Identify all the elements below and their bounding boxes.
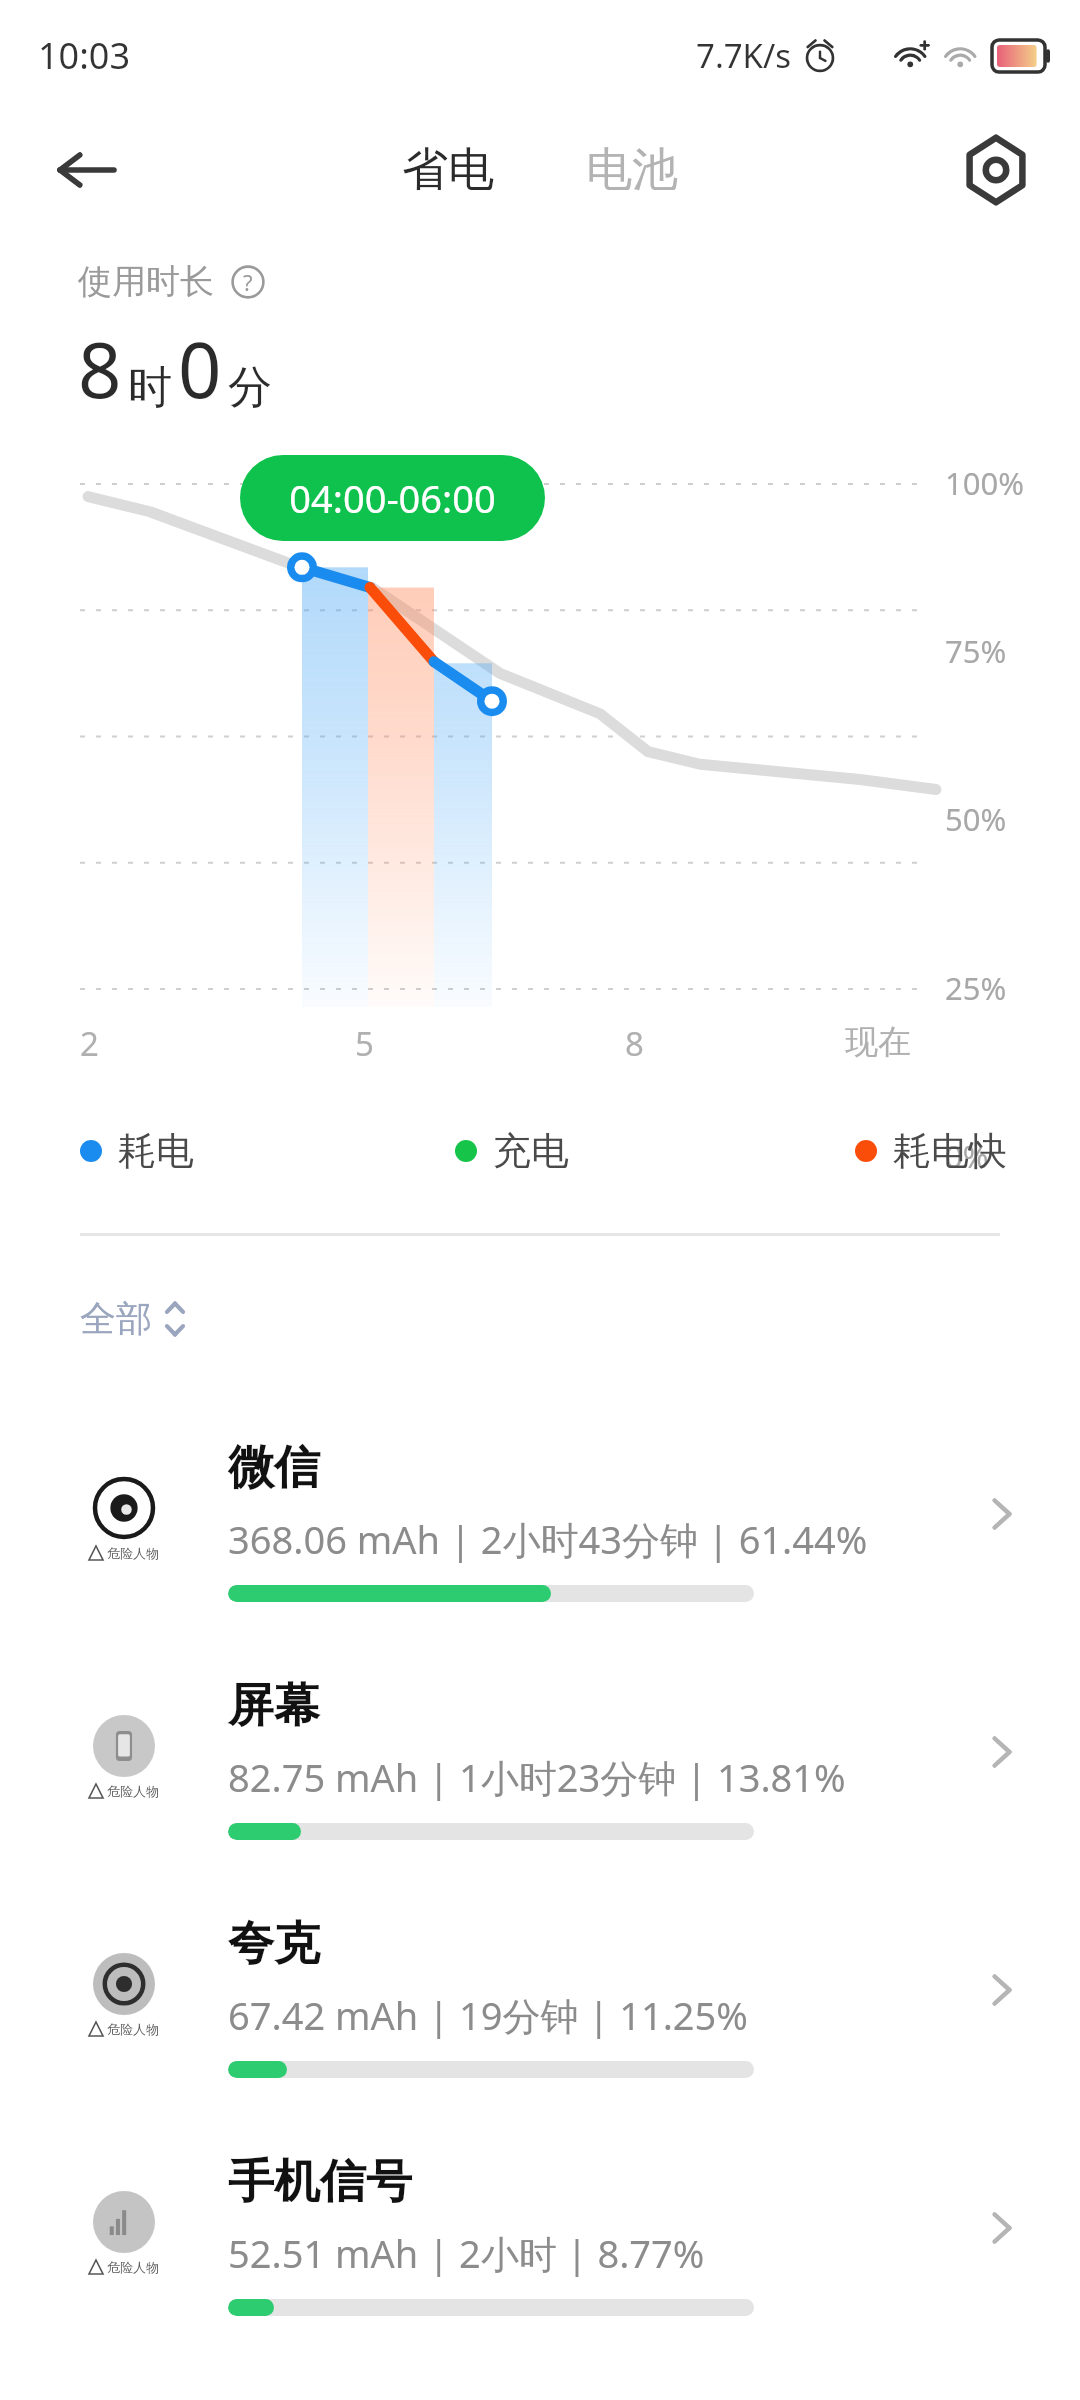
staticText: 52.51 mAh | 2小时 | 8.77% (228, 2227, 705, 2279)
staticText: 0 (178, 317, 222, 421)
staticText: 时 (128, 360, 172, 415)
staticText: 75% (945, 630, 1007, 672)
staticText: 分 (228, 360, 272, 415)
staticText: 危险人物 (107, 2021, 159, 2037)
button[interactable]: 04:00-06:00 (240, 455, 545, 541)
staticText: 2 (80, 1021, 99, 1066)
button[interactable]: 耗电快 (855, 1121, 1007, 1181)
button[interactable]: 省电 (392, 127, 504, 213)
staticText: 0% (945, 1135, 989, 1177)
button[interactable]: Help (228, 262, 268, 302)
staticText: 04:00-06:00 (289, 472, 496, 524)
button[interactable]: 充电 (455, 1121, 569, 1181)
staticText: 25% (945, 967, 1007, 1009)
button[interactable]: 危险人物 (0, 2109, 1080, 2347)
staticText: 电池 (586, 141, 678, 199)
staticText: 充电 (493, 1127, 569, 1175)
staticText: 现在 (845, 1021, 911, 1063)
staticText: 微信 (228, 1439, 320, 1497)
staticText: 耗电快 (893, 1127, 1007, 1175)
staticText: 8 (78, 317, 122, 421)
button[interactable]: Back (50, 133, 124, 207)
staticText: 82.75 mAh | 1小时23分钟 | 13.81% (228, 1751, 846, 1803)
staticText: 368.06 mAh | 2小时43分钟 | 61.44% (228, 1513, 868, 1565)
button[interactable]: 全部 (78, 1288, 188, 1349)
button[interactable]: 耗电 (80, 1121, 194, 1181)
staticText: 危险人物 (107, 2259, 159, 2275)
staticText: 危险人物 (107, 1783, 159, 1799)
staticText: 使用时长 (78, 260, 214, 303)
staticText: 8 (625, 1021, 644, 1066)
button[interactable]: 危险人物 (0, 1633, 1080, 1871)
button[interactable]: 危险人物 (0, 1871, 1080, 2109)
staticText: 省电 (402, 141, 494, 199)
staticText: 100% (945, 462, 1024, 504)
staticText: 耗电 (118, 1127, 194, 1175)
button[interactable]: 电池 (576, 127, 688, 213)
button[interactable]: Settings (956, 130, 1036, 210)
staticText: ? (243, 267, 253, 297)
staticText: 屏幕 (228, 1677, 320, 1735)
staticText: 夸克 (228, 1915, 320, 1973)
button[interactable]: 危险人物 (0, 1395, 1080, 1633)
staticText: 5 (355, 1021, 374, 1066)
staticText: 手机信号 (228, 2153, 412, 2211)
staticText: 全部 (80, 1296, 152, 1341)
staticText: 10:03 (38, 31, 131, 80)
staticText: 67.42 mAh | 19分钟 | 11.25% (228, 1989, 748, 2041)
staticText: 7.7K/s (696, 33, 792, 78)
staticText: 50% (945, 798, 1007, 840)
staticText: 危险人物 (107, 1545, 159, 1561)
